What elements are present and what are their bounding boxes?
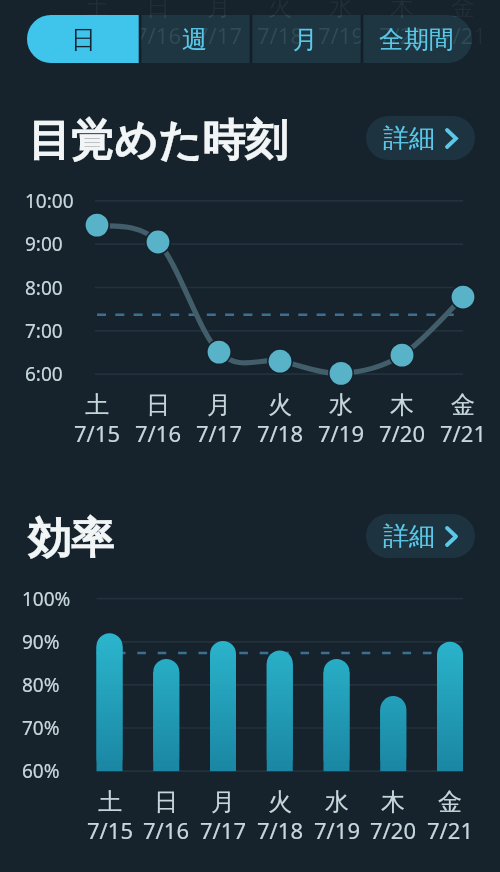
staticText: 金 — [451, 15, 472, 22]
staticText: 7/17 — [196, 20, 242, 50]
staticText: 7/20 — [379, 20, 425, 50]
staticText: 7/21 — [440, 20, 486, 50]
staticText: 7:00 — [25, 318, 63, 344]
staticText: 日 — [154, 787, 178, 817]
staticText: 月 — [207, 0, 231, 22]
button[interactable]: 週 — [139, 15, 250, 63]
staticText: 土 — [85, 0, 109, 22]
staticText: 7/16 — [143, 815, 189, 845]
staticText: 7/18 — [257, 20, 303, 50]
staticText: 7/18 — [257, 815, 303, 845]
staticText: 水 — [329, 15, 353, 22]
staticText: 月 — [211, 787, 235, 817]
staticText: 金 — [451, 0, 475, 22]
staticText: 週 — [182, 24, 207, 55]
staticText: 100% — [22, 586, 71, 612]
staticText: 7/18 — [257, 20, 303, 50]
staticText: 8:00 — [25, 275, 63, 301]
staticText: 火 — [268, 390, 292, 420]
staticText: 木 — [381, 787, 405, 817]
staticText: 90% — [22, 629, 60, 655]
staticText: 60% — [22, 758, 60, 784]
staticText: 6:00 — [25, 361, 63, 387]
staticText: 金 — [438, 787, 462, 817]
button[interactable]: 詳細 — [366, 116, 475, 160]
staticText: 9:00 — [25, 231, 63, 257]
staticText: 7/15 — [74, 418, 120, 448]
staticText: 7/15 — [74, 20, 120, 50]
staticText: 水 — [329, 390, 353, 420]
staticText: 7/20 — [379, 20, 425, 50]
button[interactable]: 日 — [27, 15, 139, 63]
staticText: 7/19 — [318, 418, 364, 448]
staticText: 月 — [207, 15, 231, 22]
staticText: 7/21 — [440, 20, 472, 50]
staticText: 木 — [390, 0, 414, 22]
staticText: 7/20 — [379, 418, 425, 448]
staticText: 全期間 — [379, 24, 454, 55]
staticText: 日 — [146, 15, 170, 22]
staticText: 火 — [268, 0, 292, 22]
staticText: 水 — [325, 787, 349, 817]
button[interactable]: 詳細 — [366, 514, 475, 558]
staticText: 10:00 — [25, 188, 74, 214]
staticText: 火 — [268, 787, 292, 817]
staticText: 火 — [268, 15, 292, 22]
staticText: 7/15 — [74, 20, 120, 50]
staticText: 水 — [329, 0, 353, 22]
staticText: 7/18 — [257, 418, 303, 448]
staticText: 効率 — [28, 512, 114, 566]
staticText: 土 — [98, 787, 122, 817]
staticText: 7/19 — [318, 20, 364, 50]
staticText: 7/20 — [370, 815, 416, 845]
staticText: 80% — [22, 672, 60, 698]
staticText: 日 — [146, 390, 170, 420]
staticText: 詳細 — [383, 520, 435, 553]
staticText: 木 — [390, 15, 414, 22]
button[interactable]: 月 — [250, 15, 361, 63]
staticText: 月 — [293, 24, 318, 55]
staticText: 日 — [71, 24, 96, 55]
staticText: 7/19 — [314, 815, 360, 845]
staticText: 7/17 — [200, 815, 246, 845]
staticText: 7/15 — [87, 815, 133, 845]
button[interactable]: 全期間 — [361, 15, 472, 63]
staticText: 7/17 — [196, 418, 242, 448]
staticText: 目覚めた時刻 — [28, 114, 289, 168]
staticText: 詳細 — [383, 122, 435, 155]
staticText: 月 — [207, 390, 231, 420]
staticText: 金 — [451, 390, 475, 420]
staticText: 日 — [146, 0, 170, 22]
staticText: 7/19 — [318, 20, 364, 50]
staticText: 7/17 — [196, 20, 242, 50]
staticText: 7/21 — [440, 418, 486, 448]
staticText: 7/16 — [135, 20, 181, 50]
staticText: 7/16 — [135, 418, 181, 448]
staticText: 7/21 — [427, 815, 473, 845]
staticText: 土 — [85, 390, 109, 420]
staticText: 70% — [22, 715, 60, 741]
staticText: 7/16 — [135, 20, 181, 50]
staticText: 木 — [390, 390, 414, 420]
